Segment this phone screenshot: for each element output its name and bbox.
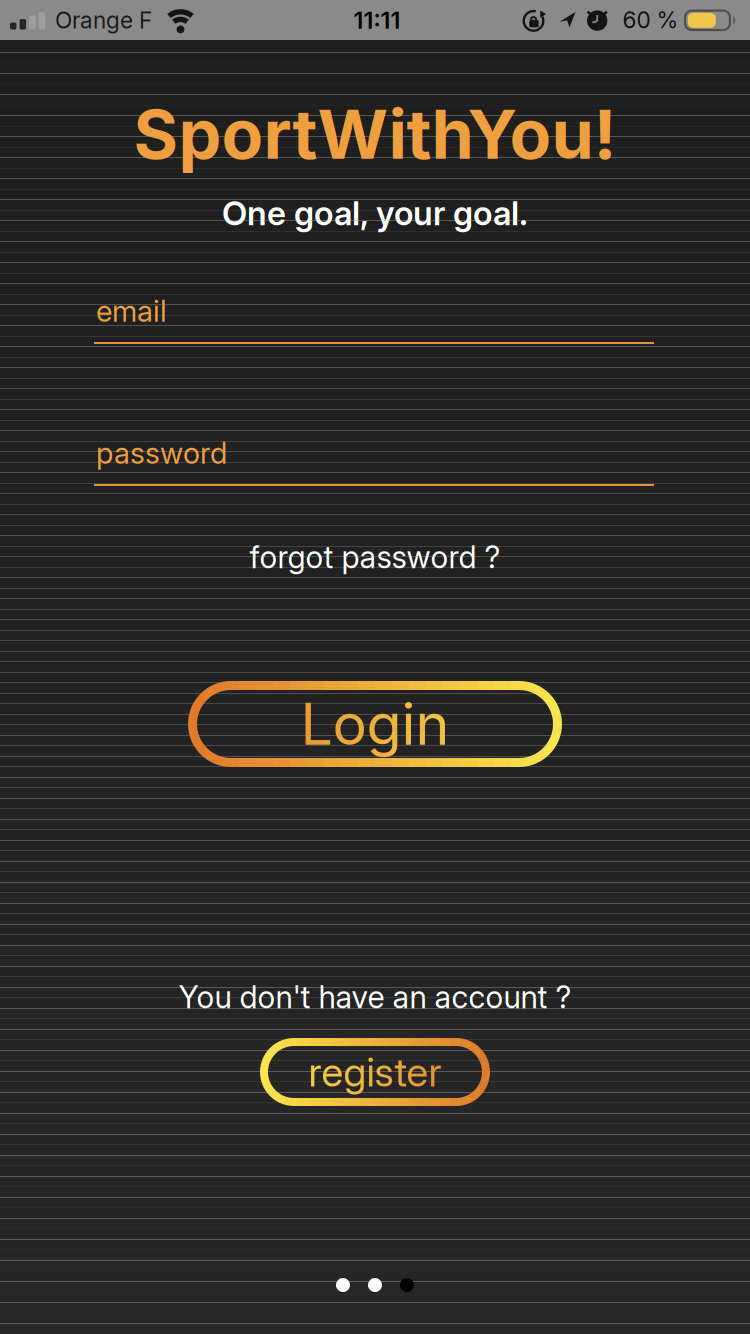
button[interactable]: forgot password ? [249,523,500,591]
button[interactable] [188,681,562,767]
staticText: password [96,436,227,470]
button[interactable] [336,1278,414,1292]
staticText: 60 % [622,7,678,33]
staticText: 11:11 [353,6,400,34]
staticText: email [96,294,167,328]
staticText: You don't have an account ? [178,979,571,1015]
staticText: Orange F [55,7,152,33]
staticText: forgot password ? [249,539,500,575]
staticText: SportWithYou! [133,94,616,174]
staticText: One goal, your goal. [222,193,528,233]
button[interactable]: email [94,284,656,344]
button[interactable]: password [94,426,656,486]
button[interactable] [260,1038,490,1106]
